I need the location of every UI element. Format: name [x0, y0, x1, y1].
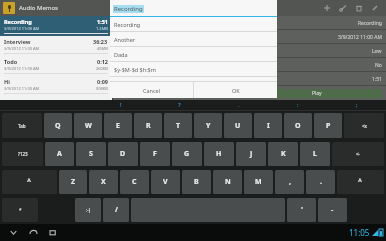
staticText: 3/9/2012 11:00 AM [4, 66, 40, 71]
button[interactable]: F [140, 142, 170, 166]
button[interactable]: C [120, 170, 149, 194]
button[interactable]: P [314, 113, 342, 138]
button[interactable]: / [103, 198, 129, 222]
button[interactable]: . [209, 100, 268, 110]
staticText: :-) [86, 207, 91, 213]
button[interactable]: ? [150, 100, 209, 110]
button[interactable]: , [275, 170, 304, 194]
button[interactable]: U [224, 113, 252, 138]
button[interactable]: Shift [2, 170, 57, 194]
button[interactable]: . [306, 170, 335, 194]
staticText: T [176, 121, 181, 131]
staticText: Hi [4, 78, 10, 85]
staticText: W [85, 121, 92, 131]
button[interactable]: B [182, 170, 211, 194]
button[interactable]: :-) [75, 198, 101, 222]
button[interactable]: 1:51 [113, 72, 386, 86]
staticText: - [331, 205, 334, 215]
button[interactable]: Recording [110, 17, 277, 32]
button[interactable]: Add [319, 0, 335, 16]
staticText: ^ [27, 177, 32, 187]
button[interactable]: R [134, 113, 162, 138]
button[interactable]: Recording [113, 16, 386, 30]
button[interactable]: OK [194, 82, 277, 98]
button[interactable]: : [268, 100, 327, 110]
staticText: Interview [4, 38, 31, 45]
button[interactable]: 3/9/2012 11:00 AM [113, 30, 386, 44]
button[interactable]: V [151, 170, 180, 194]
button[interactable]: Hi [0, 76, 112, 96]
button[interactable]: K [268, 142, 298, 166]
button[interactable]: G [172, 142, 202, 166]
staticText: Z [71, 177, 76, 187]
button[interactable]: S [76, 142, 106, 166]
button[interactable]: Edit [367, 0, 383, 16]
staticText: G [184, 149, 190, 159]
button[interactable]: ! [92, 100, 150, 110]
button[interactable]: Delete [351, 0, 367, 16]
button[interactable]: Input method [2, 198, 38, 222]
button[interactable]: Interview [0, 36, 112, 56]
staticText: <- [356, 151, 361, 157]
button[interactable]: A [45, 142, 74, 166]
button[interactable]: Low [113, 44, 386, 58]
button[interactable]: Another [110, 32, 277, 47]
button[interactable]: Recents [48, 227, 59, 238]
staticText: Another [114, 36, 135, 43]
button[interactable]: L [300, 142, 330, 166]
button[interactable]: Cancel [110, 82, 193, 98]
button[interactable]: X [89, 170, 118, 194]
button[interactable]: E [104, 113, 132, 138]
staticText: O [295, 121, 301, 131]
button[interactable]: ' [287, 198, 316, 222]
staticText: L [313, 149, 317, 159]
staticText: D [120, 149, 126, 159]
button[interactable]: ; [327, 100, 386, 110]
staticText: ? [178, 101, 181, 109]
button[interactable]: Play [251, 89, 382, 98]
staticText: Dada [114, 51, 128, 58]
button[interactable]: No [113, 58, 386, 72]
staticText: B [194, 177, 199, 187]
button[interactable]: Share [117, 89, 248, 98]
staticText: / [115, 205, 118, 215]
button[interactable]: J [236, 142, 266, 166]
button[interactable]: Home [28, 227, 39, 238]
button[interactable]: Trim [335, 0, 351, 16]
button[interactable]: Enter [332, 142, 384, 166]
staticText: ^ [358, 177, 363, 187]
button[interactable]: Todo [0, 56, 112, 76]
button[interactable]: Recording [110, 0, 277, 17]
button[interactable]: Back [8, 227, 19, 238]
staticText: 008KB [96, 86, 108, 91]
button[interactable]: M [244, 170, 273, 194]
button[interactable]: O [284, 113, 312, 138]
staticText: I [267, 121, 270, 131]
button[interactable]: T [164, 113, 192, 138]
button[interactable]: Recording [0, 16, 112, 36]
button[interactable]: D [108, 142, 138, 166]
staticText: Recording [4, 18, 32, 25]
button[interactable]: - [318, 198, 347, 222]
button[interactable]: N [213, 170, 242, 194]
button[interactable]: ?123 [2, 142, 43, 166]
button[interactable]: H [204, 142, 234, 166]
button[interactable]: Shift [337, 170, 384, 194]
button[interactable]: I [254, 113, 282, 138]
button[interactable]: Q [44, 113, 72, 138]
staticText: R [146, 121, 151, 131]
staticText: C [132, 177, 137, 187]
button[interactable]: Tab [2, 113, 42, 138]
button[interactable]: Dada [110, 47, 277, 62]
staticText: 45MB [97, 46, 108, 51]
staticText: Audio Memos [19, 4, 58, 12]
staticText: 1.2MB [96, 26, 108, 31]
button[interactable]: W [74, 113, 102, 138]
staticText: OK [232, 87, 240, 94]
button[interactable]: Y [194, 113, 222, 138]
staticText: ?123 [18, 151, 28, 157]
button[interactable]: Backspace [344, 113, 384, 138]
button[interactable]: Z [59, 170, 87, 194]
button[interactable]: $y-$M-$d $h:$m [110, 62, 277, 77]
